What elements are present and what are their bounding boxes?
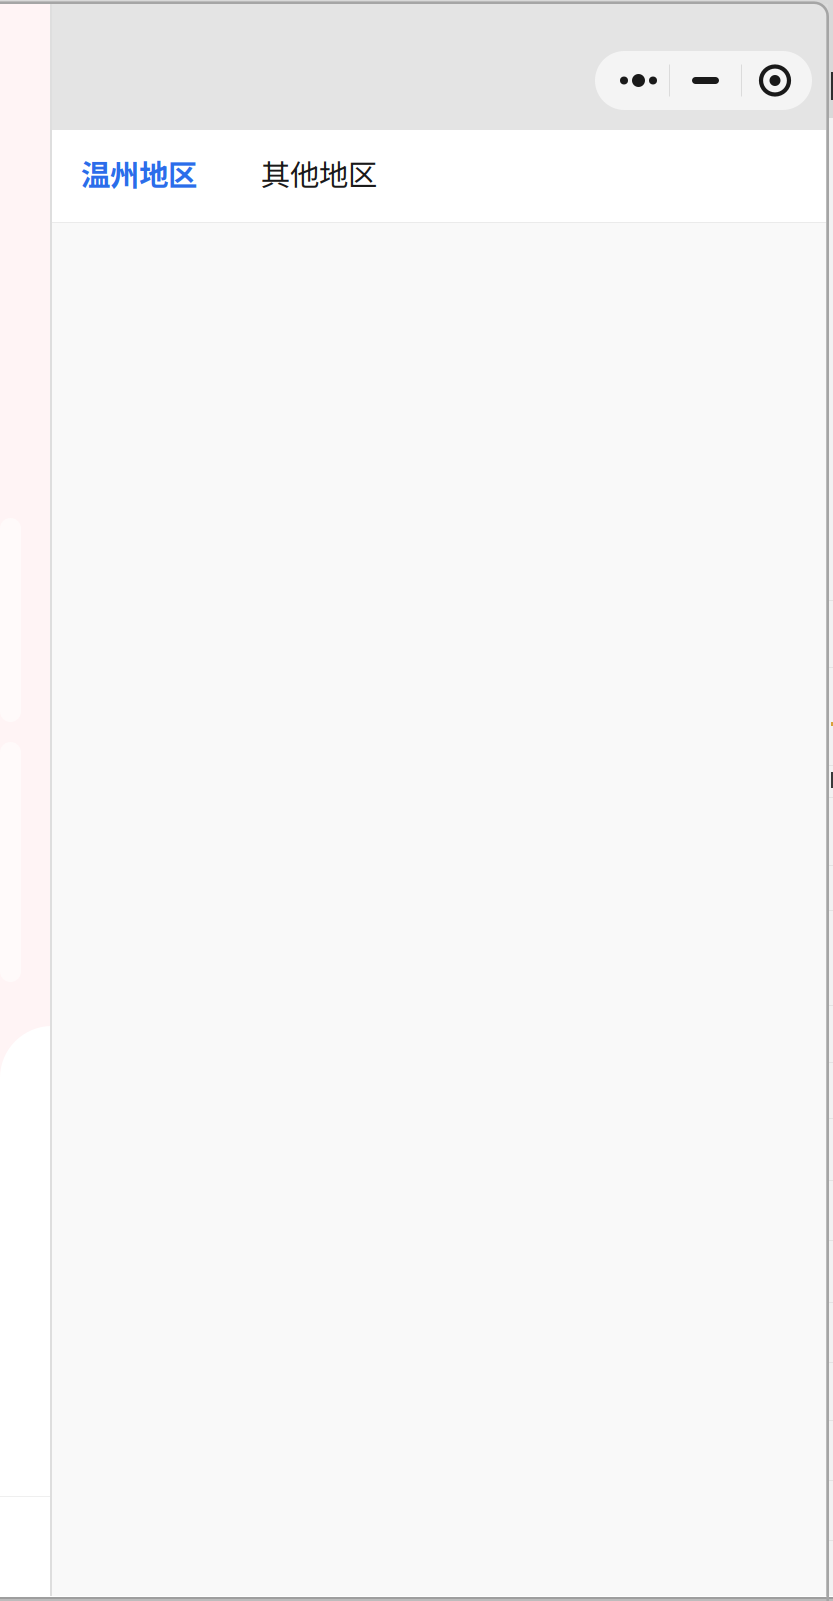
button[interactable]: More: [595, 51, 669, 110]
staticText: 温州地区: [81, 152, 197, 194]
button[interactable]: Close mini program: [742, 51, 812, 110]
button[interactable]: Minimize: [670, 51, 741, 110]
button[interactable]: 温州地区: [81, 130, 197, 222]
button[interactable]: 其他地区: [261, 130, 377, 222]
staticText: 其他地区: [261, 152, 377, 194]
